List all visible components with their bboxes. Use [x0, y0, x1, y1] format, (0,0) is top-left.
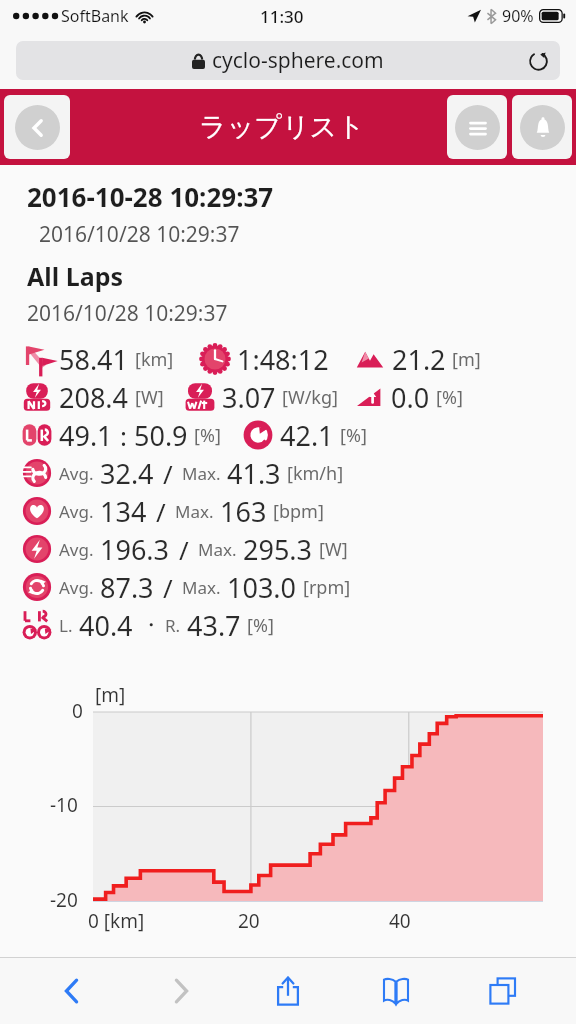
button[interactable]: Bookmarks: [361, 960, 431, 1022]
staticText: -10: [50, 792, 78, 818]
staticText: 21.2: [392, 341, 446, 378]
button[interactable]: Notifications: [512, 95, 572, 159]
staticText: [%]: [247, 613, 274, 638]
button[interactable]: Forward: [145, 960, 215, 1022]
staticText: Avg.: [59, 538, 94, 561]
staticText: 295.3: [243, 531, 313, 568]
button[interactable]: Reload: [516, 41, 560, 80]
staticText: 0: [72, 698, 83, 724]
staticText: 1:48:12: [237, 341, 329, 378]
staticText: 0.0: [391, 379, 430, 416]
staticText: [%]: [436, 385, 463, 410]
staticText: All Laps: [27, 259, 124, 293]
staticText: -20: [50, 887, 78, 913]
staticText: 41.3: [227, 455, 281, 492]
staticText: Avg.: [59, 576, 94, 599]
staticText: 196.3: [100, 531, 170, 568]
staticText: 49.1: [59, 417, 113, 454]
staticText: 87.3: [100, 569, 154, 606]
staticText: ラップリスト: [199, 110, 365, 144]
staticText: Max.: [175, 500, 214, 523]
staticText: [bpm]: [273, 499, 324, 524]
staticText: /: [179, 532, 189, 567]
staticText: Max.: [182, 576, 221, 599]
staticText: 0 [km]: [88, 908, 145, 934]
staticText: cyclo-sphere.com: [212, 46, 384, 75]
button[interactable]: Back: [38, 960, 108, 1022]
button[interactable]: Share: [253, 960, 323, 1022]
staticText: 134: [100, 493, 147, 530]
staticText: 163: [220, 493, 267, 530]
staticText: 3.07: [222, 379, 276, 416]
staticText: L.: [59, 614, 73, 637]
staticText: 42.1: [280, 417, 334, 454]
staticText: [%]: [340, 423, 367, 448]
staticText: 90%: [502, 5, 534, 27]
staticText: 2016/10/28 10:29:37: [27, 299, 228, 328]
button[interactable]: Back: [4, 95, 70, 159]
staticText: [W]: [319, 537, 348, 562]
staticText: /: [156, 494, 166, 529]
button[interactable]: cyclo-sphere.com: [16, 41, 560, 80]
staticText: :: [120, 418, 127, 453]
staticText: [m]: [452, 347, 481, 372]
staticText: 20: [238, 908, 260, 934]
staticText: [W]: [135, 385, 164, 410]
staticText: 2016/10/28 10:29:37: [39, 220, 240, 249]
staticText: [m]: [95, 682, 126, 708]
staticText: 50.9: [134, 417, 188, 454]
staticText: [km]: [135, 347, 174, 372]
staticText: 40: [389, 908, 411, 934]
staticText: [km/h]: [287, 461, 344, 486]
staticText: 58.41: [59, 341, 129, 378]
staticText: 32.4: [100, 455, 154, 492]
staticText: ・: [141, 613, 161, 638]
staticText: Avg.: [59, 462, 94, 485]
staticText: 2016-10-28 10:29:37: [27, 179, 274, 214]
button[interactable]: Menu: [447, 95, 507, 159]
staticText: 40.4: [79, 607, 133, 644]
staticText: /: [163, 456, 173, 491]
button[interactable]: Tabs: [468, 960, 538, 1022]
staticText: /: [163, 570, 173, 605]
staticText: 43.7: [187, 607, 241, 644]
staticText: 208.4: [59, 379, 129, 416]
staticText: Max.: [182, 462, 221, 485]
staticText: Max.: [198, 538, 237, 561]
staticText: 11:30: [260, 5, 304, 28]
staticText: [rpm]: [303, 575, 351, 600]
staticText: 103.0: [227, 569, 297, 606]
staticText: R.: [165, 614, 181, 637]
staticText: SoftBank: [61, 5, 129, 27]
staticText: Avg.: [59, 500, 94, 523]
staticText: [W/kg]: [282, 385, 338, 410]
staticText: [%]: [194, 423, 221, 448]
